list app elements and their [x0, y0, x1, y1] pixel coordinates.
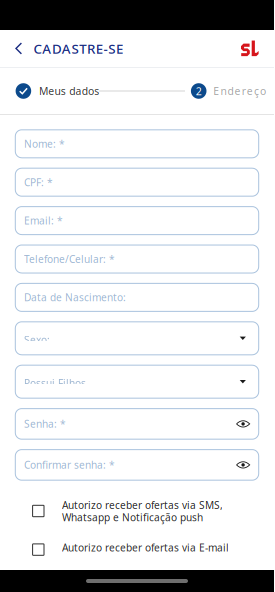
staticText: Autorizo receber ofertas via SMS, — [62, 498, 223, 512]
button[interactable]: Autorizo receber ofertas via E-mail — [33, 541, 259, 555]
staticText: Meus dados — [39, 84, 99, 98]
staticText: Senha: * — [24, 417, 66, 431]
button[interactable]: Data de Nascimento: — [15, 283, 259, 311]
button[interactable]: Senha: * — [15, 409, 259, 439]
button[interactable]: Autorizo receber ofertas via SMS, — [33, 501, 259, 524]
staticText: Nome: * — [24, 137, 65, 151]
button[interactable]: Nome: * — [15, 130, 259, 158]
button[interactable]: Email: * — [15, 207, 259, 235]
button[interactable]: Confirmar senha: * — [15, 450, 259, 480]
staticText: Autorizo receber ofertas via E-mail — [62, 541, 229, 554]
button[interactable]: Back — [0, 30, 33, 67]
button[interactable]: Sexo: — [15, 322, 259, 355]
staticText: 2 — [196, 84, 202, 98]
staticText: Whatsapp e Notificação push — [62, 510, 203, 524]
staticText: Data de Nascimento: — [24, 290, 126, 304]
staticText: CADASTRE-SE — [33, 39, 123, 58]
button[interactable]: Logo — [241, 30, 274, 67]
button[interactable]: Telefone/Celular: * — [15, 245, 259, 273]
staticText: Confirmar senha: * — [24, 458, 115, 472]
staticText: Telefone/Celular: * — [24, 252, 115, 266]
staticText: Email: * — [24, 214, 63, 227]
staticText: CPF: * — [24, 175, 53, 189]
staticText: Possui Filhos — [24, 376, 86, 390]
button[interactable]: CPF: * — [15, 168, 259, 196]
staticText: Sexo: — [24, 333, 50, 347]
staticText: Endereço — [213, 84, 266, 98]
button[interactable]: Possui Filhos — [15, 365, 259, 398]
